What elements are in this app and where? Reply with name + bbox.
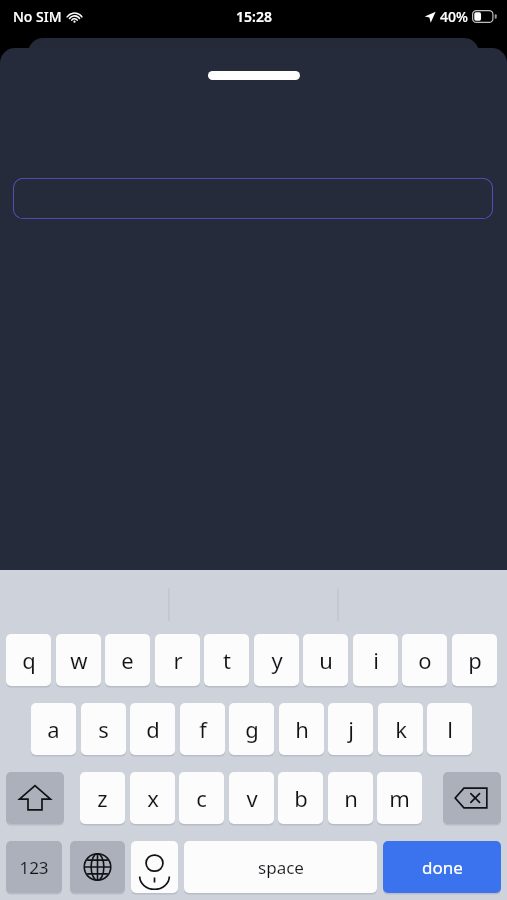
button[interactable]: b <box>278 772 323 824</box>
button[interactable]: t <box>204 634 249 686</box>
staticText: d <box>146 714 160 744</box>
staticText: v <box>246 783 258 813</box>
button[interactable]: a <box>31 703 76 755</box>
button[interactable]: space <box>184 841 377 893</box>
staticText: x <box>147 783 159 813</box>
staticText: space <box>258 856 304 879</box>
staticText: k <box>395 714 407 744</box>
staticText: b <box>294 783 308 813</box>
button[interactable]: c <box>179 772 224 824</box>
staticText: m <box>389 783 410 813</box>
button[interactable]: e <box>105 634 150 686</box>
staticText: r <box>173 645 183 675</box>
staticText: i <box>373 645 379 675</box>
button[interactable]: q <box>6 634 51 686</box>
button[interactable]: d <box>130 703 175 755</box>
button[interactable]: i <box>353 634 398 686</box>
button[interactable]: w <box>56 634 101 686</box>
button[interactable]: p <box>452 634 497 686</box>
staticText: h <box>295 714 309 744</box>
button[interactable]: Text field <box>13 178 493 219</box>
button[interactable]: h <box>279 703 324 755</box>
button[interactable]: x <box>130 772 175 824</box>
button[interactable]: m <box>377 772 422 824</box>
staticText: p <box>468 645 482 675</box>
staticText: z <box>97 783 108 813</box>
staticText: n <box>344 783 358 813</box>
button[interactable]: Shift <box>6 772 64 824</box>
button[interactable]: l <box>427 703 472 755</box>
button[interactable]: Voice input <box>131 841 178 893</box>
button[interactable]: s <box>81 703 126 755</box>
staticText: c <box>196 783 207 813</box>
button[interactable]: z <box>80 772 125 824</box>
staticText: w <box>70 645 88 675</box>
staticText: s <box>98 714 109 744</box>
staticText: y <box>271 645 283 675</box>
button[interactable]: Backspace <box>443 772 501 824</box>
staticText: f <box>199 714 207 744</box>
staticText: t <box>223 645 231 675</box>
staticText: g <box>245 714 259 744</box>
staticText: done <box>422 856 463 879</box>
button[interactable]: v <box>229 772 274 824</box>
button[interactable]: n <box>328 772 373 824</box>
staticText: e <box>121 645 134 675</box>
button[interactable]: u <box>303 634 348 686</box>
staticText: No SIM <box>13 7 62 26</box>
button[interactable] <box>208 71 300 80</box>
staticText: j <box>348 714 354 744</box>
button[interactable]: f <box>180 703 225 755</box>
button[interactable]: k <box>378 703 423 755</box>
button[interactable]: 123 <box>6 841 62 893</box>
staticText: u <box>319 645 333 675</box>
button[interactable]: g <box>229 703 274 755</box>
staticText: l <box>447 714 453 744</box>
button[interactable]: j <box>328 703 373 755</box>
staticText: 40% <box>440 7 468 26</box>
staticText: q <box>22 645 36 675</box>
button[interactable]: o <box>402 634 447 686</box>
button[interactable]: y <box>254 634 299 686</box>
button[interactable]: done <box>383 841 501 893</box>
staticText: 15:28 <box>236 7 272 26</box>
button[interactable]: Change keyboard <box>70 841 125 893</box>
staticText: a <box>47 714 60 744</box>
button[interactable]: r <box>155 634 200 686</box>
staticText: 123 <box>19 856 49 879</box>
staticText: o <box>418 645 432 675</box>
